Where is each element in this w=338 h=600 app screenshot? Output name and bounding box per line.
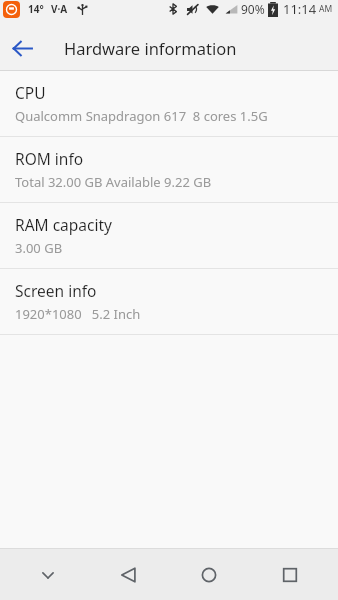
- button[interactable]: Back: [97, 549, 161, 600]
- staticText: 11:14: [283, 0, 317, 18]
- staticText: 3.00 GB: [15, 239, 63, 257]
- staticText: CPU: [15, 82, 46, 103]
- staticText: 90%: [241, 1, 265, 17]
- staticText: V·A: [51, 2, 68, 16]
- staticText: Qualcomm Snapdragon 617 8 cores 1.5G: [15, 107, 268, 125]
- staticText: 1920*1080 5.2 Inch: [15, 305, 141, 323]
- staticText: Hardware information: [64, 37, 237, 59]
- staticText: Total 32.00 GB Available 9.22 GB: [15, 173, 212, 191]
- button[interactable]: CPU: [0, 71, 338, 136]
- button[interactable]: RAM capacity: [0, 203, 338, 268]
- staticText: Screen info: [15, 280, 97, 301]
- staticText: ROM info: [15, 148, 84, 169]
- button[interactable]: Screen info: [0, 269, 338, 334]
- staticText: AM: [319, 3, 333, 15]
- button[interactable]: Back: [0, 26, 44, 70]
- button[interactable]: Hide keyboard: [16, 549, 80, 600]
- staticText: 14°: [28, 2, 44, 16]
- button[interactable]: Home: [177, 549, 241, 600]
- staticText: RAM capacity: [15, 214, 112, 235]
- button[interactable]: Recents: [258, 549, 322, 600]
- button[interactable]: ROM info: [0, 137, 338, 202]
